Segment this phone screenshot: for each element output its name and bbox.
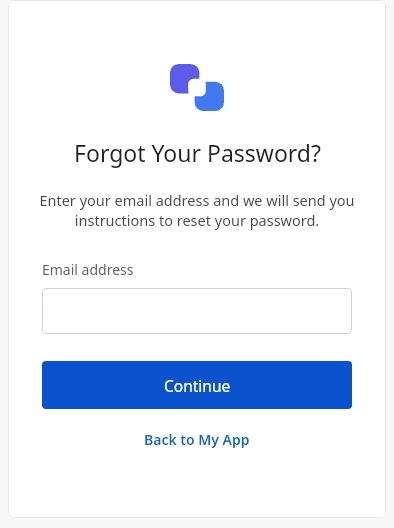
- staticText: Forgot Your Password?: [74, 137, 321, 168]
- staticText: Back to My App: [144, 430, 250, 449]
- staticText: Enter your email address and we will sen…: [28, 190, 366, 231]
- button[interactable]: Email address input: [42, 288, 352, 334]
- button[interactable]: Back to My App: [42, 426, 352, 452]
- other: App logo: [170, 64, 224, 111]
- staticText: Continue: [164, 375, 231, 396]
- staticText: Email address: [42, 260, 134, 279]
- button[interactable]: Continue: [42, 361, 352, 409]
